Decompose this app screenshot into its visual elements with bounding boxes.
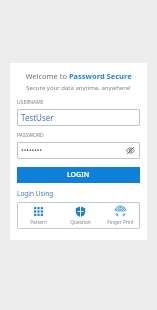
staticText: Welcome to Password Secure	[25, 71, 132, 81]
button[interactable]: Question	[59, 204, 101, 228]
staticText: Login Using	[17, 189, 54, 198]
staticText: ••••••••	[21, 146, 43, 156]
staticText: LOGIN	[67, 170, 90, 180]
staticText: TestUser	[21, 112, 54, 123]
staticText: Question	[70, 219, 91, 226]
button[interactable]: TestUser	[17, 109, 140, 126]
button[interactable]: ••••••••	[17, 142, 140, 159]
staticText: USERNAME	[17, 99, 44, 106]
staticText: Secure your data anytime, anywhere!	[26, 84, 131, 92]
staticText: PASSWORD	[17, 132, 44, 139]
button[interactable]: Toggle password visibility	[125, 145, 136, 156]
button[interactable]: Finger Print	[101, 204, 140, 228]
button[interactable]: LOGIN	[17, 167, 140, 183]
button[interactable]: Pattern	[17, 204, 59, 228]
staticText: Pattern	[30, 219, 47, 226]
staticText: Finger Print	[107, 219, 134, 226]
